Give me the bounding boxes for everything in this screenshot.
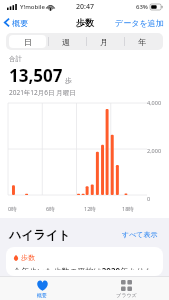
staticText: 2021年12月6日 月曜日: [9, 88, 76, 97]
staticText: 週: [62, 37, 70, 47]
staticText: 18時: [122, 205, 134, 213]
staticText: 13,507: [9, 64, 63, 87]
staticText: Y!mobile: [20, 3, 45, 11]
staticText: 月: [100, 37, 108, 47]
staticText: 0: [147, 195, 151, 202]
staticText: 12時: [84, 205, 96, 213]
staticText: 概要: [12, 18, 28, 28]
staticText: すべて表示: [122, 230, 158, 239]
staticText: ハイライト: [9, 227, 71, 242]
staticText: 概要: [37, 292, 47, 298]
staticText: 歩数: [76, 17, 94, 28]
staticText: 0時: [8, 205, 17, 213]
button[interactable]: ブラウズ: [84, 277, 169, 300]
button[interactable]: 月: [86, 35, 122, 48]
staticText: 63%: [136, 3, 148, 11]
staticText: 合計: [9, 55, 22, 63]
staticText: ブラウズ: [116, 292, 137, 298]
staticText: 4,000: [147, 99, 162, 106]
button[interactable]: 週: [48, 35, 84, 48]
button[interactable]: 歩数: [6, 247, 163, 276]
staticText: 歩: [65, 76, 72, 85]
button[interactable]: データを追加: [110, 14, 169, 31]
staticText: 今年歩いた歩数の平均は2020年よりも少: [13, 265, 156, 270]
button[interactable]: すべて表示: [120, 228, 160, 241]
button[interactable]: 年: [124, 35, 160, 48]
button[interactable]: 日: [9, 35, 46, 48]
button[interactable]: 概要: [0, 14, 34, 31]
staticText: 日: [24, 37, 32, 47]
staticText: 年: [138, 37, 146, 47]
staticText: 歩数: [21, 253, 35, 262]
staticText: 20:47: [76, 2, 94, 12]
staticText: 2,000: [147, 147, 162, 154]
staticText: データを追加: [115, 18, 164, 28]
button[interactable]: 概要: [0, 277, 84, 300]
staticText: 6時: [46, 205, 55, 213]
